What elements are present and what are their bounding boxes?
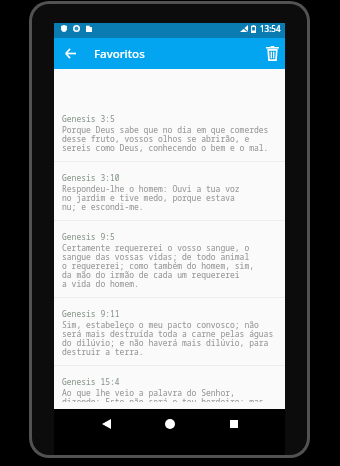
button[interactable]: Genesis 15:4 xyxy=(54,366,285,409)
staticText: Genesis 9:5 xyxy=(62,231,115,242)
button[interactable]: Genesis 3:5 xyxy=(54,103,285,161)
staticText: 13:54 xyxy=(260,23,281,34)
staticText: Sim, estabeleço o meu pacto convosco; nã… xyxy=(62,319,274,358)
button[interactable]: Back xyxy=(86,409,126,439)
button[interactable]: Genesis 3:10 xyxy=(54,162,285,220)
button[interactable]: Home xyxy=(150,409,190,439)
staticText: Certamente requererei o vosso sangue, o … xyxy=(62,242,254,290)
button[interactable]: Back xyxy=(59,38,81,69)
staticText: Ao que lhe veio a palavra do Senhor, diz… xyxy=(62,387,264,402)
staticText: Respondeu-lhe o homem: Ouvi a tua voz no… xyxy=(62,183,240,213)
staticText: Genesis 3:10 xyxy=(62,172,120,183)
button[interactable]: Delete xyxy=(259,38,285,69)
button[interactable]: Recents xyxy=(214,409,254,439)
staticText: Favoritos xyxy=(94,46,145,62)
button[interactable]: Genesis 9:5 xyxy=(54,221,285,297)
staticText: Genesis 3:5 xyxy=(62,113,115,124)
staticText: Genesis 9:11 xyxy=(62,308,120,319)
staticText: Genesis 15:4 xyxy=(62,376,120,387)
staticText: Porque Deus sabe que no dia em que comer… xyxy=(62,124,269,154)
button[interactable]: Genesis 9:11 xyxy=(54,298,285,365)
